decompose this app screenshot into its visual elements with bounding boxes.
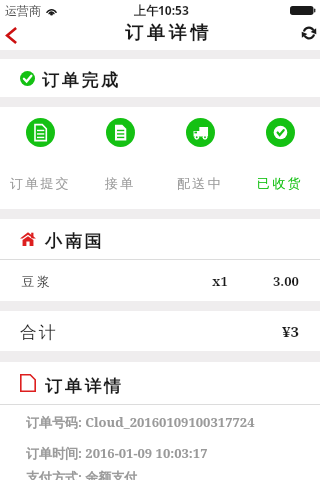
button[interactable]: 订单提交 — [0, 107, 80, 191]
staticText: 上午10:53 — [134, 2, 189, 18]
button[interactable]: 接单 — [80, 107, 160, 191]
button[interactable]: 已收货 — [240, 107, 320, 191]
staticText: 合计 — [20, 322, 58, 343]
staticText: 小南国 — [45, 231, 105, 252]
staticText: 订单号码: Cloud_20160109100317724 — [26, 413, 255, 431]
button[interactable]: 配送中 — [160, 107, 240, 191]
staticText: ¥3 — [282, 321, 299, 341]
button[interactable]: 订单详情 — [0, 362, 320, 404]
staticText: 订单详情 — [125, 22, 213, 45]
button[interactable]: 支付方式: 余额支付 — [0, 467, 320, 480]
button[interactable]: 订单时间: 2016-01-09 10:03:17 — [0, 436, 320, 467]
staticText: 豆浆 — [20, 273, 51, 289]
staticText: 配送中 — [177, 175, 223, 191]
staticText: x1 — [212, 272, 228, 290]
button[interactable]: Refresh — [286, 20, 320, 50]
staticText: 3.00 — [273, 272, 299, 290]
staticText: 订单提交 — [10, 175, 71, 191]
staticText: 运营商 — [5, 3, 41, 18]
button[interactable]: 豆浆 — [0, 260, 320, 301]
staticText: 已收货 — [257, 175, 303, 191]
staticText: 支付方式: 余额支付 — [26, 468, 138, 480]
staticText: 订单时间: 2016-01-09 10:03:17 — [26, 444, 208, 462]
button[interactable]: Back — [0, 20, 36, 50]
button[interactable]: 合计 — [0, 311, 320, 351]
staticText: 接单 — [105, 175, 136, 191]
button[interactable]: 小南国 — [0, 219, 320, 259]
button[interactable]: 订单完成 — [0, 59, 320, 97]
button[interactable]: 订单号码: Cloud_20160109100317724 — [0, 405, 320, 436]
staticText: 订单完成 — [42, 70, 121, 91]
staticText: 订单详情 — [45, 376, 124, 397]
